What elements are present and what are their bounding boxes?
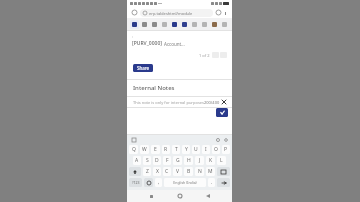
button[interactable]: I — [202, 145, 210, 154]
button[interactable]: Search — [140, 20, 149, 29]
staticText: F — [166, 157, 169, 164]
staticText: R — [164, 146, 168, 153]
button[interactable]: List — [160, 20, 169, 29]
button[interactable]: K — [206, 156, 215, 165]
button[interactable]: . — [208, 178, 215, 187]
button[interactable]: Notes — [190, 20, 199, 29]
button[interactable]: , — [155, 178, 162, 187]
button[interactable]: W — [140, 145, 149, 154]
staticText: O — [214, 146, 218, 153]
staticText: : — [132, 34, 134, 39]
staticText: L — [220, 157, 223, 164]
staticText: G — [176, 157, 180, 164]
staticText: Account... — [164, 41, 185, 47]
staticText: erp.tableshtml/module — [149, 11, 193, 16]
button[interactable]: T — [172, 145, 180, 154]
button[interactable]: Search — [223, 137, 228, 142]
button[interactable]: More options — [222, 10, 228, 16]
button[interactable]: P — [222, 145, 230, 154]
button[interactable]: Submit note — [216, 108, 228, 117]
staticText: U — [194, 146, 198, 153]
staticText: Z — [146, 168, 149, 175]
button[interactable]: U — [192, 145, 200, 154]
staticText: Share — [137, 65, 150, 71]
button[interactable]: Dashboard — [130, 20, 139, 29]
button[interactable]: Home — [175, 191, 185, 201]
staticText: 1 of 2 — [199, 53, 210, 58]
button[interactable]: H — [184, 156, 193, 165]
button[interactable]: S — [143, 156, 151, 165]
button[interactable]: Y — [182, 145, 190, 154]
staticText: N — [198, 168, 202, 175]
staticText: W — [142, 146, 147, 153]
staticText: K — [209, 157, 213, 164]
staticText: S — [146, 157, 149, 164]
staticText: Q — [132, 146, 136, 153]
button[interactable]: Shift — [129, 167, 141, 176]
button[interactable]: Recent apps — [146, 191, 156, 201]
button[interactable]: Grid — [200, 20, 209, 29]
button[interactable]: O — [212, 145, 220, 154]
button[interactable]: M — [206, 167, 215, 176]
button[interactable]: Q — [129, 145, 138, 154]
button[interactable]: E — [151, 145, 160, 154]
staticText: D — [155, 157, 159, 164]
staticText: H — [187, 157, 191, 164]
button[interactable]: N — [195, 167, 204, 176]
button[interactable]: A — [133, 156, 141, 165]
staticText: ?123 — [132, 180, 140, 185]
staticText: This note is only for internal purposes — [133, 100, 204, 105]
staticText: 200/400 — [204, 100, 220, 105]
button[interactable]: G — [173, 156, 182, 165]
button[interactable]: Backspace — [217, 167, 230, 176]
staticText: , — [158, 179, 160, 186]
button[interactable]: X — [153, 167, 161, 176]
button[interactable]: Clear — [222, 99, 226, 105]
button[interactable]: Info — [170, 20, 179, 29]
button[interactable]: Page info — [215, 9, 222, 16]
button[interactable]: Enter — [217, 178, 230, 187]
button[interactable]: L — [217, 156, 226, 165]
button[interactable]: Emoji — [144, 178, 153, 187]
staticText: M — [208, 168, 213, 175]
staticText: A — [135, 157, 139, 164]
staticText: E — [154, 146, 157, 153]
button[interactable]: Profile — [210, 20, 219, 29]
button[interactable]: ?123 — [129, 178, 142, 187]
staticText: Internal Notes — [133, 84, 175, 92]
button[interactable]: Share — [133, 64, 153, 72]
staticText: C — [165, 168, 169, 175]
staticText: B — [187, 168, 191, 175]
button[interactable]: Calls — [150, 20, 159, 29]
staticText: Y — [185, 146, 188, 153]
button[interactable]: F — [163, 156, 171, 165]
button[interactable]: Home — [131, 9, 138, 16]
button[interactable]: Z — [143, 167, 151, 176]
staticText: J — [199, 157, 201, 164]
button[interactable]: Settings — [215, 137, 220, 142]
staticText: English (India) — [173, 180, 197, 185]
button[interactable]: Contacts — [180, 20, 189, 29]
button[interactable]: erp.tableshtml/module — [140, 9, 213, 17]
button[interactable]: D — [153, 156, 161, 165]
button[interactable]: Delete — [220, 20, 229, 29]
button[interactable]: C — [163, 167, 171, 176]
button[interactable]: R — [162, 145, 170, 154]
button[interactable]: Back — [203, 191, 213, 201]
button[interactable]: V — [173, 167, 182, 176]
staticText: T — [175, 146, 178, 153]
staticText: . — [211, 179, 213, 186]
staticText: X — [156, 168, 159, 175]
button[interactable]: B — [184, 167, 193, 176]
button[interactable]: Clipboard — [131, 137, 136, 142]
staticText: I — [205, 146, 207, 153]
staticText: P — [224, 146, 228, 153]
staticText: V — [176, 168, 180, 175]
button[interactable]: J — [195, 156, 204, 165]
staticText: [PURV_0000] — [132, 40, 162, 47]
button[interactable]: English (India) — [164, 178, 206, 187]
